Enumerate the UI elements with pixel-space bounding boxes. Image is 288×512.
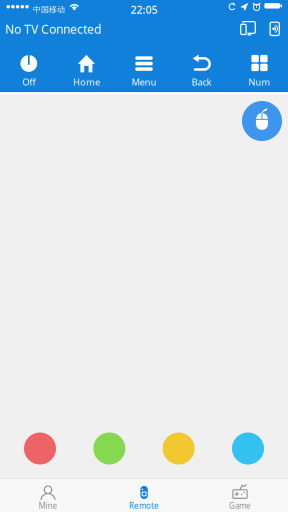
staticText: Remote bbox=[129, 500, 159, 511]
staticText: No TV Connected bbox=[5, 21, 101, 37]
staticText: 22:05 bbox=[130, 2, 157, 17]
button[interactable]: Home bbox=[58, 38, 115, 91]
staticText: 中国移动 bbox=[33, 5, 65, 14]
button[interactable]: Off bbox=[0, 38, 58, 91]
button[interactable]: Menu bbox=[115, 38, 173, 91]
staticText: Home bbox=[73, 76, 100, 88]
button[interactable]: Mouse pad bbox=[242, 101, 282, 141]
button[interactable]: Num bbox=[230, 38, 288, 91]
button[interactable]: Screen mirroring bbox=[232, 19, 260, 38]
staticText: Menu bbox=[131, 76, 156, 88]
button[interactable]: Connect device bbox=[264, 19, 286, 38]
staticText: Game bbox=[229, 500, 251, 511]
button[interactable]: Back bbox=[173, 38, 230, 91]
button[interactable]: Mine bbox=[0, 479, 96, 512]
staticText: Back bbox=[192, 76, 212, 88]
staticText: Num bbox=[248, 76, 270, 88]
staticText: Off bbox=[22, 76, 35, 88]
button[interactable]: Remote bbox=[96, 479, 192, 512]
staticText: Mine bbox=[38, 500, 57, 511]
button[interactable]: Game bbox=[192, 479, 288, 512]
